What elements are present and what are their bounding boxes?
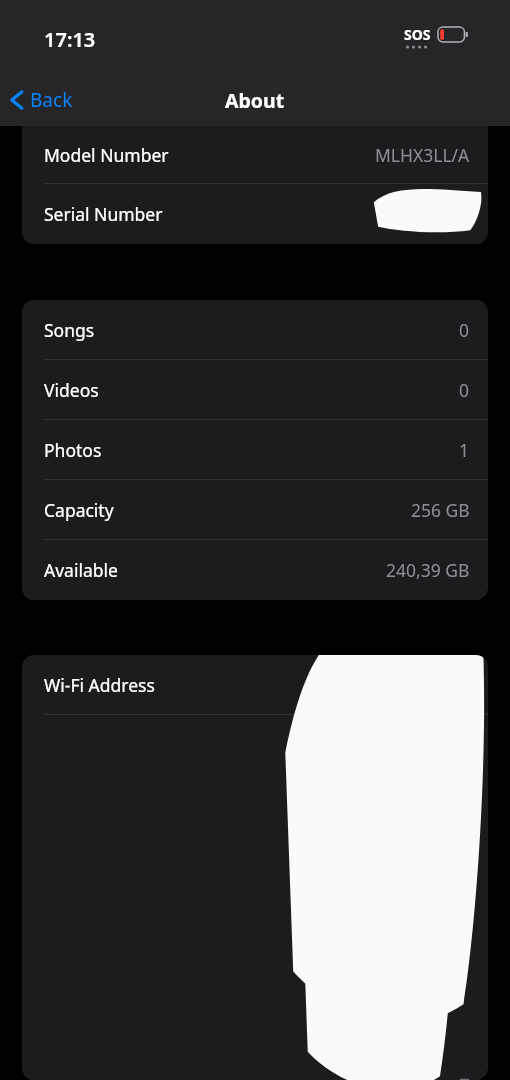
staticText: Capacity (44, 498, 114, 522)
button[interactable]: Back (10, 78, 73, 122)
staticText: 1 (459, 438, 470, 462)
button[interactable]: Songs (22, 300, 488, 360)
button[interactable]: Wi-Fi Address (22, 655, 488, 715)
button[interactable]: Model Number (22, 126, 488, 184)
staticText: SOS (404, 25, 431, 44)
staticText: 0 (459, 318, 470, 342)
staticText: 256 GB (411, 498, 470, 522)
staticText: Wi-Fi Address (44, 673, 155, 697)
staticText: 17:13 (44, 26, 96, 53)
button[interactable]: Available (22, 540, 488, 600)
staticText: Back (30, 87, 73, 113)
staticText: 240,39 GB (386, 558, 470, 582)
button[interactable]: Videos (22, 360, 488, 420)
staticText: Photos (44, 438, 102, 462)
staticText: Songs (44, 318, 95, 342)
staticText: 0 (459, 378, 470, 402)
button[interactable]: Serial Number (22, 184, 488, 244)
staticText: MLHX3LL/A (375, 143, 470, 167)
button[interactable]: Capacity (22, 480, 488, 540)
button[interactable]: Photos (22, 420, 488, 480)
staticText: Videos (44, 378, 99, 402)
staticText: Model Number (44, 143, 169, 167)
staticText: Serial Number (44, 202, 163, 226)
staticText: Available (44, 558, 118, 582)
staticText: About (225, 87, 285, 114)
